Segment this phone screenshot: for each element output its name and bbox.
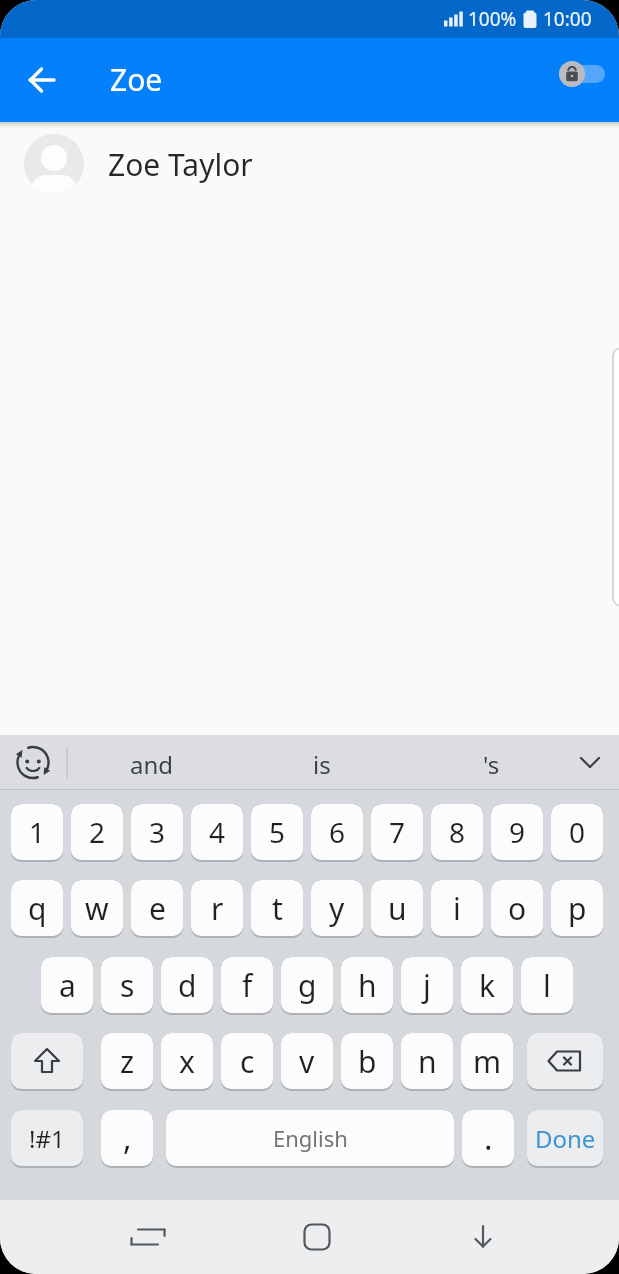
- staticText: ,: [123, 1116, 132, 1160]
- staticText: r: [211, 888, 224, 929]
- staticText: 7: [389, 813, 406, 851]
- button[interactable]: [287, 1207, 347, 1267]
- button[interactable]: t: [251, 880, 303, 938]
- staticText: 0: [569, 813, 586, 851]
- staticText: h: [358, 965, 377, 1006]
- staticText: 9: [509, 813, 526, 851]
- staticText: c: [240, 1041, 255, 1082]
- button[interactable]: a: [41, 957, 93, 1015]
- button[interactable]: 9: [491, 804, 543, 862]
- staticText: l: [543, 965, 551, 1006]
- staticText: 100%: [468, 6, 517, 32]
- staticText: i: [453, 888, 461, 929]
- staticText: x: [179, 1041, 195, 1082]
- staticText: t: [272, 888, 283, 929]
- staticText: 2: [89, 813, 106, 851]
- button[interactable]: 3: [131, 804, 183, 862]
- button[interactable]: [118, 1207, 178, 1267]
- staticText: j: [423, 965, 431, 1006]
- staticText: Zoe: [110, 59, 163, 100]
- staticText: Done: [535, 1122, 596, 1155]
- button[interactable]: [453, 1207, 513, 1267]
- staticText: s: [120, 965, 135, 1006]
- staticText: !#1: [29, 1122, 65, 1155]
- staticText: .: [484, 1116, 493, 1160]
- staticText: 6: [329, 813, 346, 851]
- button[interactable]: Zoe Taylor: [0, 122, 619, 206]
- staticText: o: [508, 888, 527, 929]
- button[interactable]: !#1: [11, 1110, 83, 1168]
- staticText: 3: [149, 813, 166, 851]
- button[interactable]: j: [401, 957, 453, 1015]
- button[interactable]: s: [101, 957, 153, 1015]
- button[interactable]: g: [281, 957, 333, 1015]
- staticText: v: [299, 1041, 315, 1082]
- button[interactable]: w: [71, 880, 123, 938]
- button[interactable]: f: [221, 957, 273, 1015]
- button[interactable]: b: [341, 1033, 393, 1091]
- staticText: z: [120, 1041, 135, 1082]
- button[interactable]: [527, 1033, 603, 1091]
- staticText: u: [388, 888, 407, 929]
- staticText: a: [59, 965, 76, 1006]
- button[interactable]: x: [161, 1033, 213, 1091]
- button[interactable]: h: [341, 957, 393, 1015]
- staticText: 10:00: [543, 6, 592, 32]
- button[interactable]: z: [101, 1033, 153, 1091]
- button[interactable]: e: [131, 880, 183, 938]
- button[interactable]: y: [311, 880, 363, 938]
- staticText: 8: [449, 813, 466, 851]
- button[interactable]: 2: [71, 804, 123, 862]
- button[interactable]: 8: [431, 804, 483, 862]
- button[interactable]: u: [371, 880, 423, 938]
- button[interactable]: 4: [191, 804, 243, 862]
- button[interactable]: c: [221, 1033, 273, 1091]
- button[interactable]: p: [551, 880, 603, 938]
- staticText: q: [28, 888, 47, 929]
- staticText: k: [479, 965, 496, 1006]
- button[interactable]: 6: [311, 804, 363, 862]
- button[interactable]: v: [281, 1033, 333, 1091]
- staticText: f: [242, 965, 253, 1006]
- staticText: English: [273, 1123, 348, 1153]
- staticText: y: [329, 888, 345, 929]
- staticText: d: [178, 965, 197, 1006]
- button[interactable]: 0: [551, 804, 603, 862]
- button[interactable]: [18, 56, 66, 104]
- button[interactable]: o: [491, 880, 543, 938]
- staticText: b: [358, 1041, 377, 1082]
- button[interactable]: [546, 54, 618, 94]
- button[interactable]: k: [461, 957, 513, 1015]
- staticText: n: [418, 1041, 437, 1082]
- button[interactable]: English: [166, 1110, 454, 1168]
- button[interactable]: ,: [101, 1110, 153, 1168]
- staticText: g: [298, 965, 317, 1006]
- staticText: and: [130, 748, 174, 781]
- staticText: w: [85, 888, 109, 929]
- button[interactable]: 1: [11, 804, 63, 862]
- staticText: 5: [269, 813, 286, 851]
- staticText: 4: [209, 813, 226, 851]
- staticText: p: [568, 888, 587, 929]
- button[interactable]: d: [161, 957, 213, 1015]
- staticText: e: [149, 888, 166, 929]
- staticText: m: [473, 1041, 502, 1082]
- staticText: is: [313, 748, 331, 781]
- staticText: 1: [29, 813, 46, 851]
- button[interactable]: l: [521, 957, 573, 1015]
- button[interactable]: r: [191, 880, 243, 938]
- button[interactable]: Done: [527, 1110, 603, 1168]
- button[interactable]: q: [11, 880, 63, 938]
- button[interactable]: 5: [251, 804, 303, 862]
- button[interactable]: m: [461, 1033, 513, 1091]
- staticText: 's: [483, 748, 500, 781]
- staticText: Zoe Taylor: [108, 144, 253, 185]
- button[interactable]: 7: [371, 804, 423, 862]
- button[interactable]: i: [431, 880, 483, 938]
- button[interactable]: .: [462, 1110, 514, 1168]
- button[interactable]: n: [401, 1033, 453, 1091]
- button[interactable]: [11, 1033, 83, 1091]
